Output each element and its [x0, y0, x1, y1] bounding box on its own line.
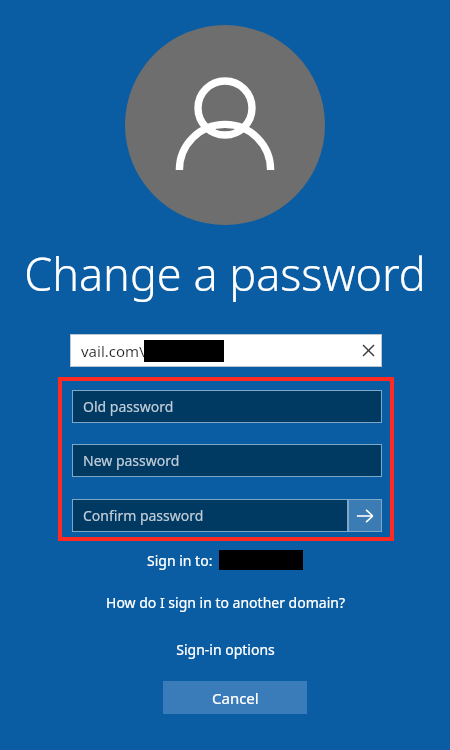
button[interactable]: Submit — [348, 499, 382, 532]
staticText: Old password — [83, 397, 174, 416]
staticText: How do I sign in to another domain? — [106, 593, 345, 612]
staticText: Sign in to: — [147, 551, 213, 570]
button[interactable]: Clear user name — [354, 334, 382, 367]
staticText: Change a password — [24, 243, 426, 304]
button[interactable]: Cancel — [163, 681, 307, 714]
button[interactable]: Old password — [72, 390, 382, 423]
button[interactable]: vail.com\ — [70, 334, 382, 367]
button[interactable]: Sign-in options — [0, 636, 450, 662]
staticText: Sign-in options — [176, 640, 275, 659]
staticText: Confirm password — [83, 506, 204, 525]
button[interactable]: New password — [72, 444, 382, 477]
staticText: Cancel — [212, 688, 259, 708]
button[interactable]: How do I sign in to another domain? — [0, 589, 450, 615]
button[interactable]: Confirm password — [72, 499, 382, 532]
other: User account picture — [125, 25, 325, 225]
staticText: vail.com\ — [81, 341, 145, 361]
staticText: New password — [83, 451, 180, 470]
